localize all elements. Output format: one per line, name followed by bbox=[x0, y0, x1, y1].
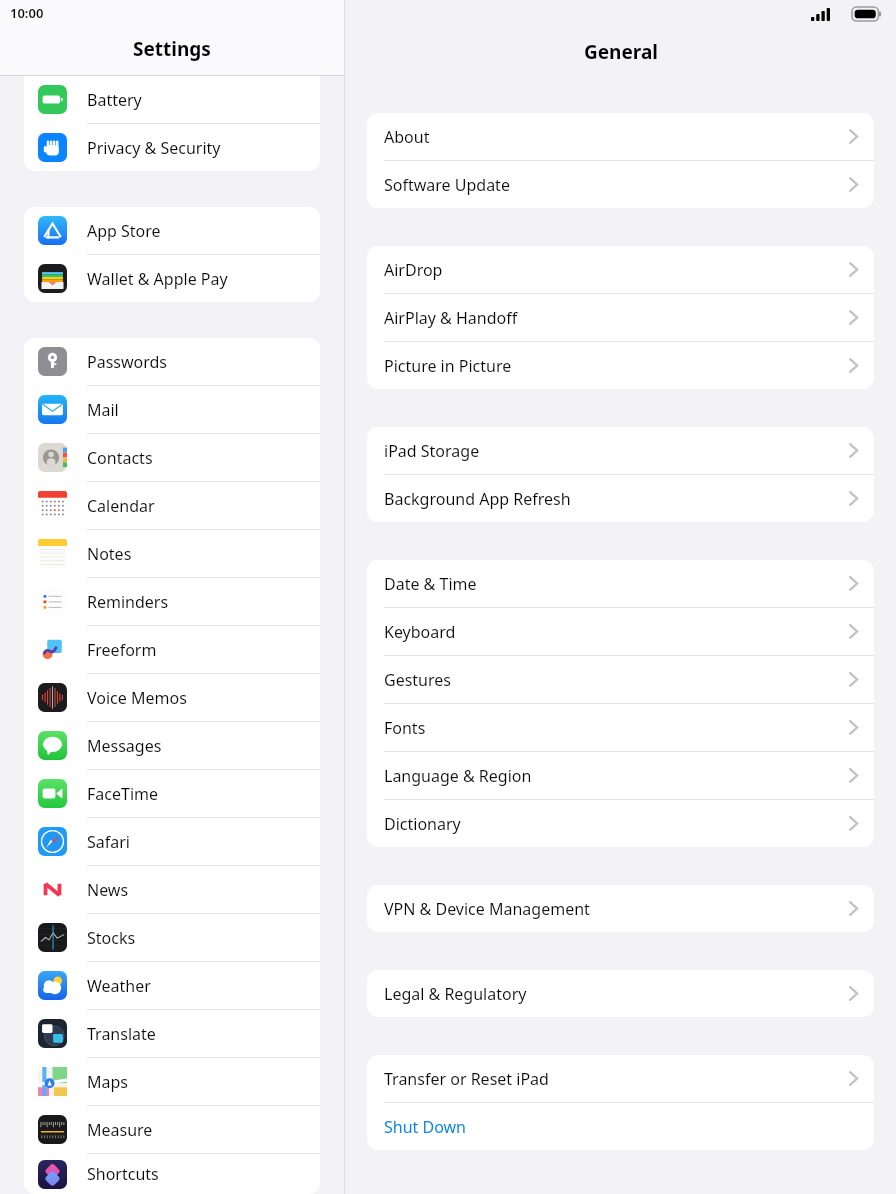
button[interactable]: Background App Refresh bbox=[367, 475, 874, 522]
staticText: Software Update bbox=[384, 174, 510, 196]
button[interactable]: iPad Storage bbox=[367, 427, 874, 475]
other: Contacts bbox=[38, 443, 67, 472]
other: Passwords bbox=[38, 347, 67, 376]
staticText: News bbox=[87, 879, 129, 901]
staticText: General bbox=[584, 39, 658, 65]
other: Wallet and Apple Pay bbox=[38, 264, 67, 293]
button[interactable]: About bbox=[367, 113, 874, 161]
staticText: Dictionary bbox=[384, 813, 461, 835]
button[interactable]: Freeform bbox=[24, 626, 320, 674]
staticText: Notes bbox=[87, 543, 132, 565]
staticText: Keyboard bbox=[384, 621, 456, 643]
other: Shortcuts bbox=[38, 1160, 67, 1189]
button[interactable]: AirDrop bbox=[367, 246, 874, 294]
other: FaceTime bbox=[38, 779, 67, 808]
button[interactable]: App Store bbox=[24, 207, 320, 255]
staticText: Battery bbox=[87, 89, 142, 111]
button[interactable]: Wallet and Apple Pay bbox=[24, 255, 320, 302]
button[interactable]: Translate bbox=[24, 1010, 320, 1058]
staticText: Transfer or Reset iPad bbox=[384, 1068, 549, 1090]
button[interactable]: Software Update bbox=[367, 161, 874, 208]
staticText: Language & Region bbox=[384, 765, 532, 787]
button[interactable]: Language & Region bbox=[367, 752, 874, 800]
other: App Store bbox=[38, 216, 67, 245]
other: Voice Memos bbox=[38, 683, 67, 712]
button[interactable]: FaceTime bbox=[24, 770, 320, 818]
other: Stocks bbox=[38, 923, 67, 952]
staticText: Gestures bbox=[384, 669, 451, 691]
other: Reminders bbox=[38, 587, 67, 616]
staticText: AirDrop bbox=[384, 259, 443, 281]
staticText: FaceTime bbox=[87, 783, 158, 805]
button[interactable]: Gestures bbox=[367, 656, 874, 704]
staticText: Date & Time bbox=[384, 573, 477, 595]
button[interactable]: VPN & Device Management bbox=[367, 885, 874, 932]
other: Measure bbox=[38, 1115, 67, 1144]
staticText: Freeform bbox=[87, 639, 157, 661]
other: Weather bbox=[38, 971, 67, 1000]
button[interactable]: News bbox=[24, 866, 320, 914]
other: Translate bbox=[38, 1019, 67, 1048]
button[interactable]: Picture in Picture bbox=[367, 342, 874, 389]
button[interactable]: Keyboard bbox=[367, 608, 874, 656]
staticText: Passwords bbox=[87, 351, 168, 373]
staticText: Legal & Regulatory bbox=[384, 983, 527, 1005]
staticText: Contacts bbox=[87, 447, 153, 469]
staticText: Weather bbox=[87, 975, 151, 997]
button[interactable]: Contacts bbox=[24, 434, 320, 482]
staticText: Mail bbox=[87, 399, 119, 421]
button[interactable]: Weather bbox=[24, 962, 320, 1010]
staticText: iPad Storage bbox=[384, 440, 480, 462]
other: Messages bbox=[38, 731, 67, 760]
button[interactable]: Dictionary bbox=[367, 800, 874, 847]
other: Privacy and Security bbox=[38, 133, 67, 162]
button[interactable]: Stocks bbox=[24, 914, 320, 962]
button[interactable]: Shortcuts bbox=[24, 1154, 320, 1194]
button[interactable]: Fonts bbox=[367, 704, 874, 752]
staticText: Picture in Picture bbox=[384, 355, 512, 377]
staticText: Voice Memos bbox=[87, 687, 187, 709]
button[interactable]: AirPlay & Handoff bbox=[367, 294, 874, 342]
other: Notes bbox=[38, 539, 67, 568]
staticText: Reminders bbox=[87, 591, 169, 613]
button[interactable]: Mail bbox=[24, 386, 320, 434]
staticText: Safari bbox=[87, 831, 130, 853]
button[interactable]: Voice Memos bbox=[24, 674, 320, 722]
staticText: About bbox=[384, 126, 430, 148]
staticText: Maps bbox=[87, 1071, 128, 1093]
button[interactable]: Battery bbox=[24, 76, 320, 124]
button[interactable]: Privacy and Security bbox=[24, 124, 320, 171]
button[interactable]: Notes bbox=[24, 530, 320, 578]
staticText: Background App Refresh bbox=[384, 488, 571, 510]
button[interactable]: Date & Time bbox=[367, 560, 874, 608]
button[interactable]: Calendar bbox=[24, 482, 320, 530]
button[interactable]: Measure bbox=[24, 1106, 320, 1154]
staticText: Shortcuts bbox=[87, 1163, 159, 1185]
staticText: App Store bbox=[87, 220, 161, 242]
staticText: Wallet & Apple Pay bbox=[87, 268, 228, 290]
other: Battery bbox=[38, 85, 67, 114]
button[interactable]: Shut Down bbox=[367, 1103, 874, 1150]
other: Safari bbox=[38, 827, 67, 856]
button[interactable]: Safari bbox=[24, 818, 320, 866]
staticText: VPN & Device Management bbox=[384, 898, 590, 920]
staticText: 10:00 bbox=[10, 4, 44, 22]
button[interactable]: Transfer or Reset iPad bbox=[367, 1055, 874, 1103]
staticText: Fonts bbox=[384, 717, 426, 739]
button[interactable]: Maps bbox=[24, 1058, 320, 1106]
staticText: Shut Down bbox=[384, 1116, 467, 1138]
other: Mail bbox=[38, 395, 67, 424]
staticText: Stocks bbox=[87, 927, 136, 949]
staticText: Translate bbox=[87, 1023, 156, 1045]
button[interactable]: Legal & Regulatory bbox=[367, 970, 874, 1017]
button[interactable]: Messages bbox=[24, 722, 320, 770]
button[interactable]: Passwords bbox=[24, 338, 320, 386]
button[interactable]: Reminders bbox=[24, 578, 320, 626]
other: Calendar bbox=[38, 491, 67, 520]
staticText: Messages bbox=[87, 735, 162, 757]
staticText: AirPlay & Handoff bbox=[384, 307, 518, 329]
other: Maps bbox=[38, 1067, 67, 1096]
staticText: Settings bbox=[133, 36, 211, 62]
staticText: Calendar bbox=[87, 495, 155, 517]
other: Freeform bbox=[38, 635, 67, 664]
